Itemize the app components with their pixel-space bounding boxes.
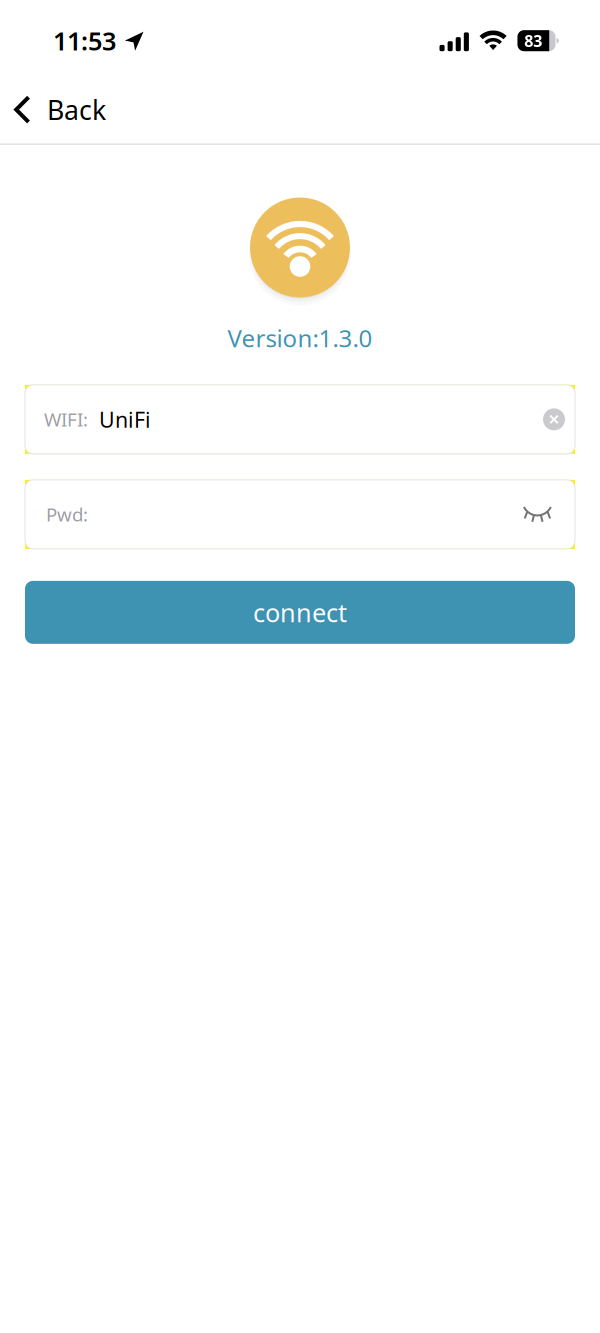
button[interactable]: WIFI:: [25, 385, 575, 454]
staticText: connect: [253, 596, 347, 629]
button[interactable]: Clear text: [533, 395, 575, 443]
button[interactable]: Show password: [512, 492, 563, 537]
button[interactable]: connect: [25, 581, 575, 644]
staticText: Version:1.3.0: [227, 322, 372, 354]
button[interactable]: Pwd:: [25, 480, 575, 549]
staticText: Pwd:: [46, 502, 88, 527]
staticText: Back: [47, 92, 106, 127]
button[interactable]: Back: [0, 76, 124, 143]
staticText: UniFi: [99, 405, 151, 433]
staticText: WIFI:: [44, 407, 88, 432]
staticText: 11:53: [53, 24, 116, 57]
staticText: 83: [524, 30, 542, 51]
